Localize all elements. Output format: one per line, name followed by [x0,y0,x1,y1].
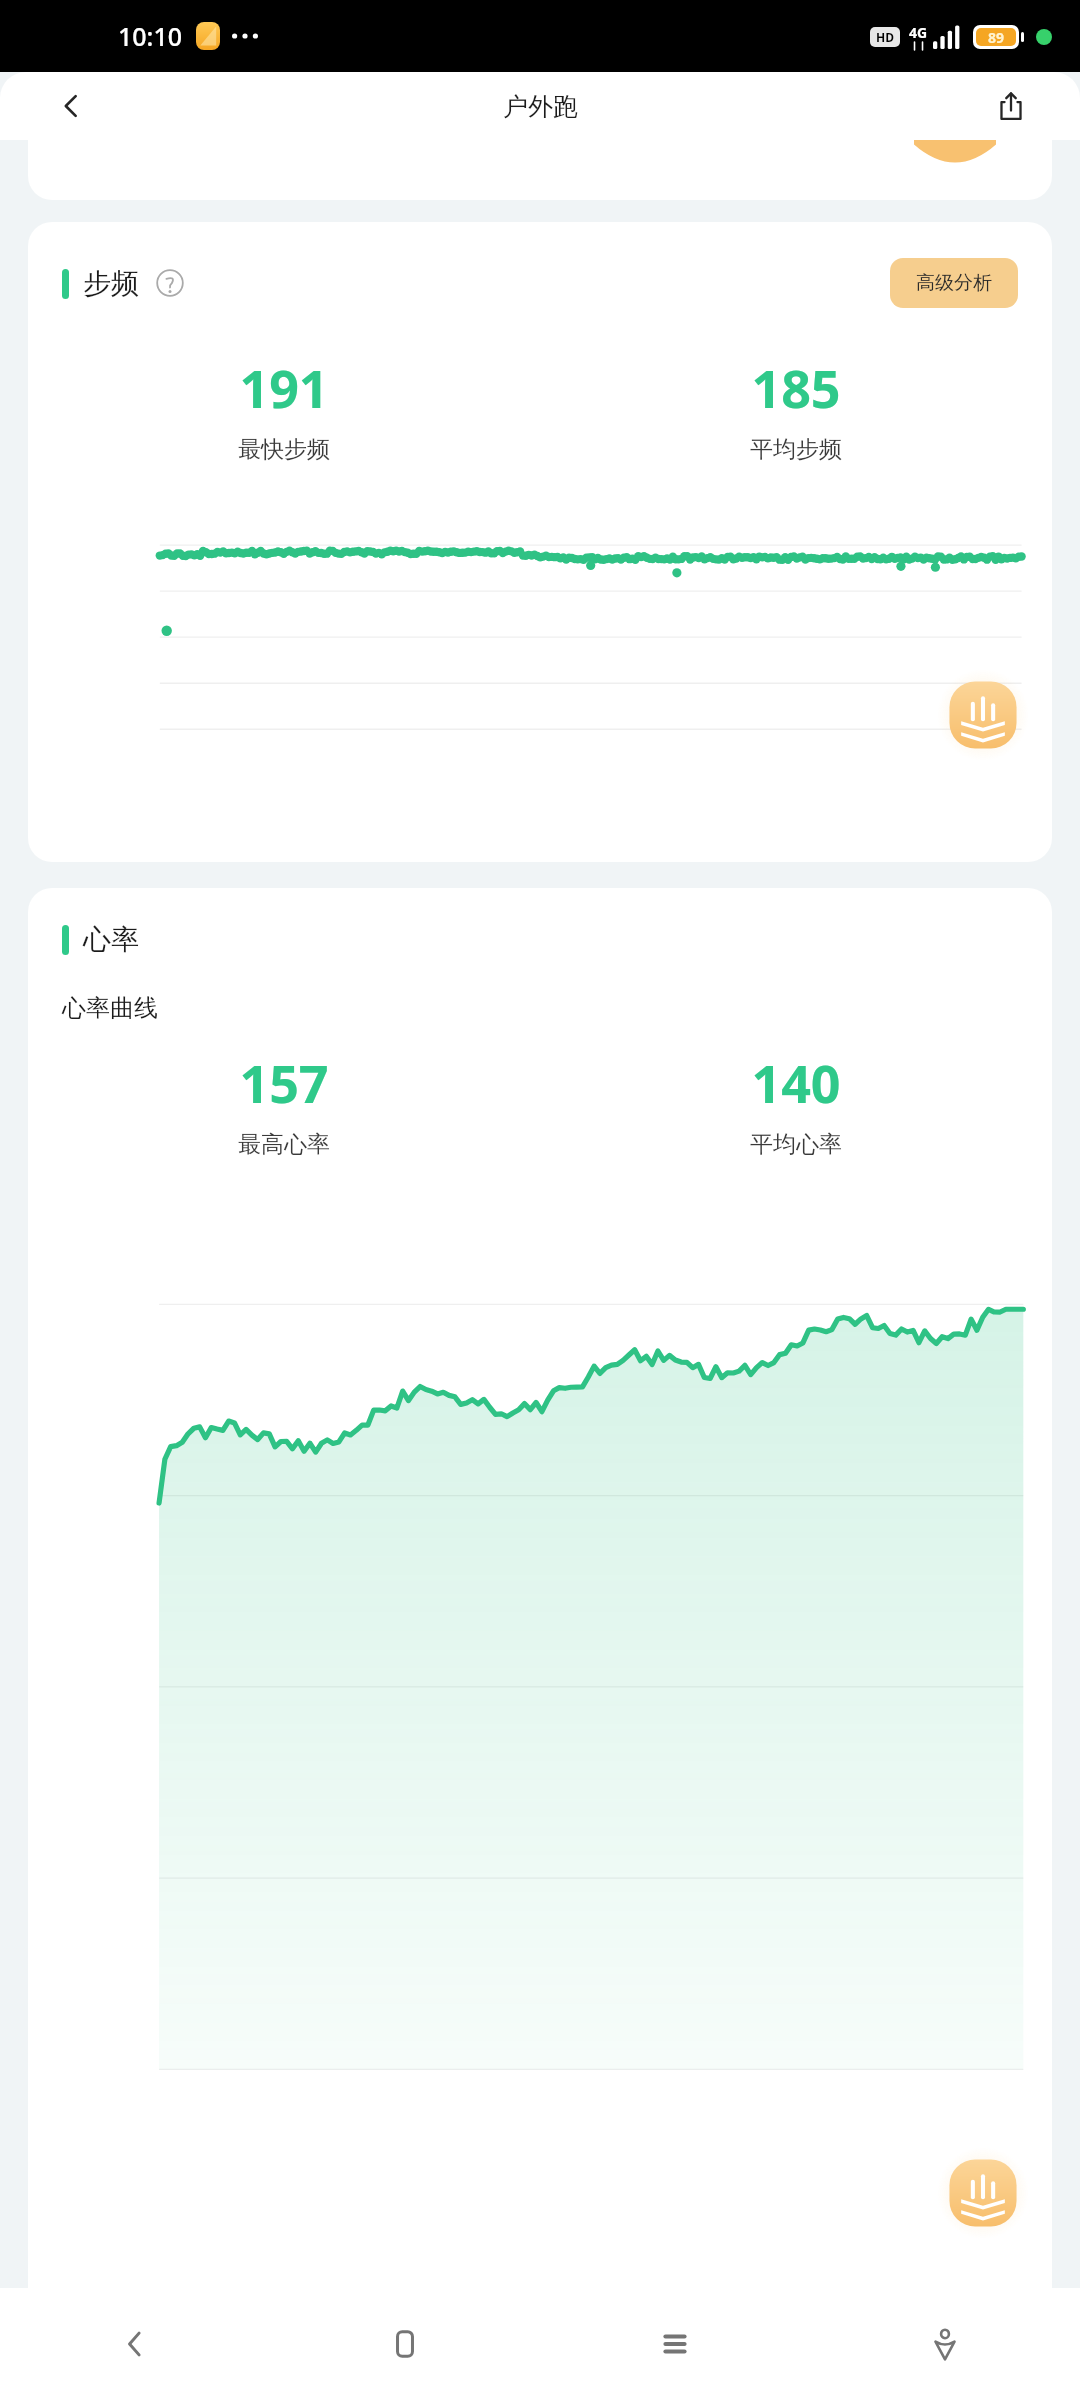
button[interactable]: 高级分析 [890,258,1018,308]
staticText: 步频 [83,266,139,301]
staticText: 157 [239,1047,329,1118]
button[interactable]: Share [982,77,1040,135]
staticText: 心率曲线 [62,993,158,1023]
button[interactable]: Back [42,77,100,135]
button[interactable]: Back [0,2288,270,2400]
staticText: 10:10 [118,19,183,53]
button[interactable]: Assistant [810,2288,1080,2400]
staticText: 185 [751,352,841,423]
staticText: 最高心率 [238,1130,330,1159]
button[interactable]: 数据说明 [944,676,1022,754]
staticText: 心率 [83,922,139,957]
staticText: HD [876,29,894,45]
staticText: 191 [239,352,329,423]
staticText: 最快步频 [238,435,330,464]
staticText: 户外跑 [503,91,578,122]
button[interactable]: Menu [540,2288,810,2400]
staticText: 平均步频 [750,435,842,464]
staticText: 4G [909,23,928,42]
button[interactable]: Home [270,2288,540,2400]
staticText: 140 [751,1047,841,1118]
button[interactable]: 帮助 [155,268,185,298]
button[interactable]: 数据说明 [944,2154,1022,2232]
staticText: 高级分析 [916,271,992,295]
staticText: 89 [988,28,1005,46]
staticText: 平均心率 [750,1130,842,1159]
